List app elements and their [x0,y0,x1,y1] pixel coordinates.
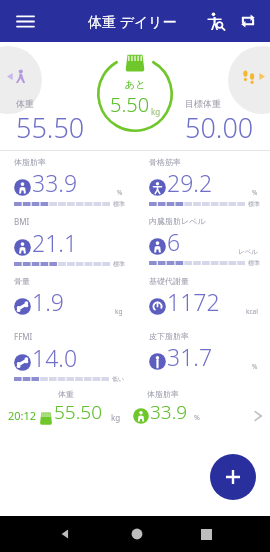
staticText: 体重 デイリー [88,12,177,31]
staticText: 体重 [16,98,34,109]
staticText: 33.9 [32,167,78,198]
staticText: 標準 [113,260,125,268]
staticText: 20:12 [8,408,37,423]
staticText: 50.00 [185,109,254,146]
staticText: 5.50 [110,91,150,118]
staticText: 1172 [167,286,220,317]
staticText: 標準 [248,259,260,267]
staticText: 6 [167,226,181,257]
staticText: BMI [14,216,30,227]
staticText: % [194,413,200,423]
staticText: 31.7 [167,341,213,372]
button[interactable]: Sync [232,5,264,37]
staticText: kg [111,412,121,423]
button[interactable]: 骨格筋率 [135,151,270,210]
staticText: レベル [238,248,258,256]
staticText: 骨量 [14,276,30,286]
staticText: 皮下脂肪率 [149,331,189,341]
staticText: kg [115,307,123,316]
staticText: 骨格筋率 [149,157,181,167]
staticText: 14.0 [32,342,78,373]
staticText: 標準 [248,200,260,208]
staticText: 低い [112,375,125,383]
staticText: FFMI [14,331,33,342]
button[interactable]: 体脂肪率 [0,151,135,210]
button[interactable]: BMI [0,210,135,270]
button[interactable]: Menu [8,4,42,38]
button[interactable]: Previous metric [0,46,42,114]
staticText: あと [125,78,146,91]
button[interactable]: 内臓脂肪レベル [135,210,270,269]
button[interactable]: 骨量 [0,270,135,325]
staticText: 体脂肪率 [147,389,179,399]
staticText: 55.50 [54,399,103,425]
staticText: 55.50 [16,109,85,146]
staticText: 体重 [58,389,74,399]
staticText: 体脂肪率 [14,157,46,167]
staticText: 1.9 [32,286,64,317]
button[interactable]: FFMI [0,325,135,385]
button[interactable]: 皮下脂肪率 [135,325,270,380]
staticText: 29.2 [167,167,213,198]
staticText: 基礎代謝量 [149,276,189,286]
staticText: kcal [246,307,258,316]
staticText: 21.1 [32,227,78,258]
staticText: % [117,188,123,197]
staticText: 標準 [113,200,125,208]
staticText: % [252,362,258,371]
staticText: 33.9 [150,399,188,425]
button[interactable]: Search person [200,5,232,37]
staticText: 目標体重 [185,98,221,109]
staticText: 内臓脂肪レベル [149,216,206,226]
button[interactable]: 基礎代謝量 [135,270,270,325]
button[interactable]: Goal progress [97,56,173,132]
staticText: % [252,188,258,197]
button[interactable]: Add record [210,454,256,500]
button[interactable]: 体重 [0,387,270,429]
staticText: kg [151,106,161,117]
button[interactable]: Next metric [228,46,270,114]
